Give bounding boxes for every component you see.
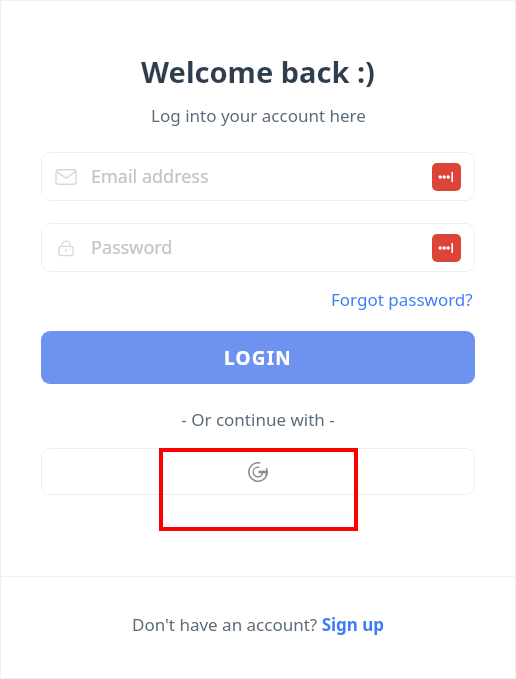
button[interactable]: Forgot password? <box>329 286 475 313</box>
button[interactable]: Autofill password <box>432 234 461 262</box>
button[interactable]: Email address <box>41 152 475 201</box>
staticText: Welcome back :) <box>141 52 375 91</box>
button[interactable]: Autofill password <box>432 163 461 191</box>
staticText: Log into your account here <box>151 104 366 127</box>
staticText: Forgot password? <box>331 288 473 311</box>
button[interactable]: LOGIN <box>41 331 475 384</box>
button[interactable]: Continue with Google <box>41 448 475 495</box>
staticText: Email address <box>91 164 432 189</box>
staticText: LOGIN <box>224 345 292 371</box>
button[interactable]: Password <box>41 223 475 272</box>
button[interactable]: Don't have an account? Sign up <box>130 611 387 638</box>
staticText: - Or continue with - <box>181 408 335 431</box>
staticText: Password <box>91 235 432 260</box>
staticText: Don't have an account? Sign up <box>132 613 385 636</box>
